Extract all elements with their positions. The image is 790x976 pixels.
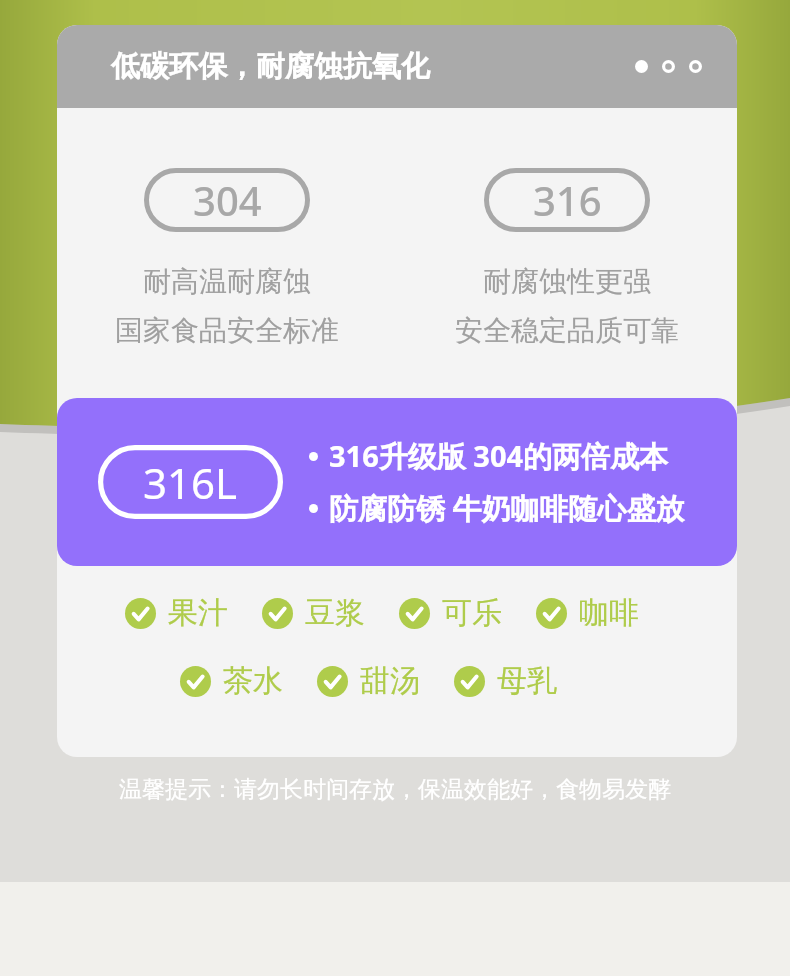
staticText: 国家食品安全标准 [115,313,339,348]
staticText: 豆浆 [305,594,365,632]
other: Supported: 可乐 [399,598,430,629]
button[interactable]: Supported: 豆浆 [262,594,365,632]
button[interactable]: 304 [57,108,397,348]
button[interactable]: Page 1 [635,60,648,73]
staticText: 耐腐蚀性更强 [483,264,651,299]
staticText: 母乳 [497,662,557,700]
button[interactable]: Supported: 母乳 [454,662,557,700]
staticText: 茶水 [223,662,283,700]
other: Supported: 母乳 [454,666,485,697]
other: Supported: 果汁 [125,598,156,629]
button[interactable]: Supported: 咖啡 [536,594,639,632]
staticText: 安全稳定品质可靠 [455,313,679,348]
button[interactable]: Supported: 茶水 [180,662,283,700]
staticText: 304 [193,173,262,227]
other: Supported: 甜汤 [317,666,348,697]
staticText: 果汁 [168,594,228,632]
staticText: 耐高温耐腐蚀 [143,264,311,299]
button[interactable]: Supported: 果汁 [125,594,228,632]
button[interactable]: 316L [57,398,737,566]
other: Supported: 咖啡 [536,598,567,629]
other: Supported: 茶水 [180,666,211,697]
staticText: 咖啡 [579,594,639,632]
button[interactable]: Page 3 [689,60,702,73]
other: Supported: 豆浆 [262,598,293,629]
staticText: 316L [143,454,238,511]
staticText: 温馨提示：请勿长时间存放，保温效能好，食物易发酵 [0,775,790,804]
staticText: 316升级版 304的两倍成本 [329,436,669,476]
staticText: 低碳环保，耐腐蚀抗氧化 [111,48,430,85]
staticText: 316 [533,173,602,227]
staticText: 可乐 [442,594,502,632]
staticText: 防腐防锈 牛奶咖啡随心盛放 [329,488,685,528]
button[interactable]: Page 2 [662,60,675,73]
button[interactable]: 316 [397,108,737,348]
button[interactable]: Supported: 甜汤 [317,662,420,700]
staticText: 甜汤 [360,662,420,700]
button[interactable]: Supported: 可乐 [399,594,502,632]
